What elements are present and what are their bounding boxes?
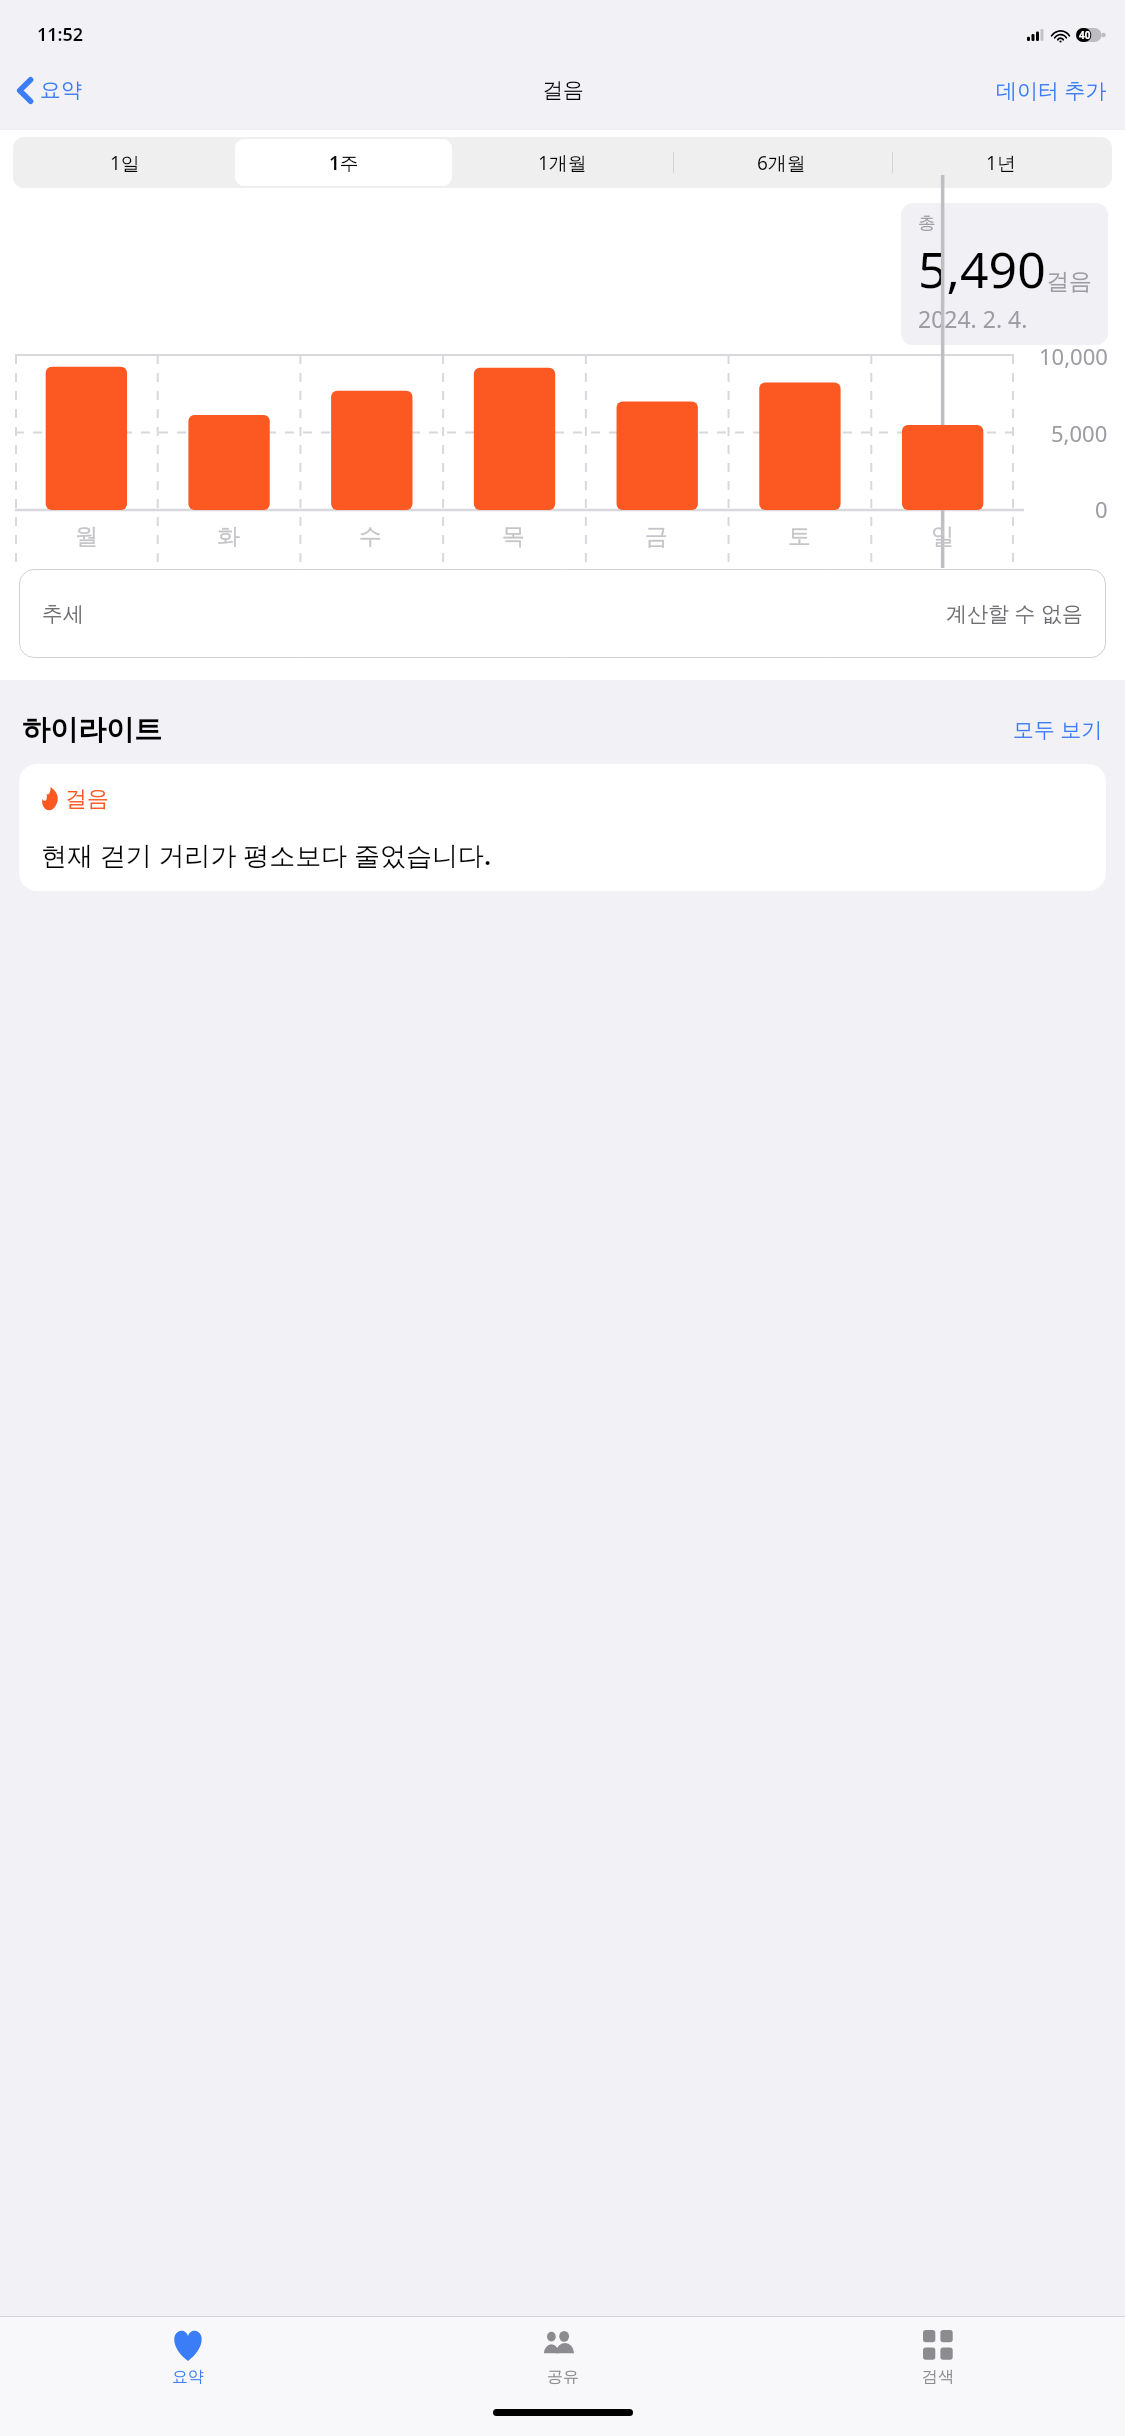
staticText: 총 [918,212,936,235]
staticText: 1일 [110,150,140,176]
button[interactable]: 1개월 [454,139,671,186]
button[interactable]: 추세 [19,569,1106,658]
staticText: 2024. 2. 4. [918,303,1028,334]
staticText: 40 [1079,28,1091,42]
staticText: 1주 [329,150,359,176]
button[interactable]: 모두 보기 [1013,715,1103,744]
staticText: 걸음 [542,77,584,103]
button[interactable]: 6개월 [673,139,890,186]
button[interactable]: 1일 [16,139,233,186]
staticText: 추세 [42,601,84,627]
staticText: 일 [931,522,954,551]
button[interactable]: 1년 [892,139,1109,186]
button[interactable]: 걸음 [19,764,1106,891]
staticText: 공유 [547,2367,579,2387]
staticText: 수 [359,522,382,551]
other: 검색 [923,2330,953,2360]
button[interactable]: 데이터 추가 [978,66,1125,115]
staticText: 11:52 [37,22,84,47]
button[interactable]: 요약 [10,69,90,111]
staticText: 월 [75,522,98,551]
staticText: 요약 [40,77,82,103]
button[interactable]: 1주 [235,139,452,186]
staticText: 현재 걷기 거리가 평소보다 줄었습니다. [41,837,492,873]
other: 공유 [544,2331,582,2360]
staticText: 걸음 [65,785,109,813]
staticText: 걸음 [1046,267,1092,296]
staticText: 목 [502,522,525,551]
staticText: 금 [645,522,668,551]
staticText: 요약 [172,2367,204,2387]
staticText: 1개월 [538,150,587,176]
other: 요약 [171,2330,205,2361]
button[interactable]: 요약 [0,2317,375,2402]
staticText: 0 [1095,494,1108,524]
staticText: 5,490 [918,235,1046,303]
staticText: 6개월 [757,150,806,176]
button[interactable]: 검색 [750,2317,1125,2402]
staticText: 5,000 [1051,418,1108,448]
staticText: 하이라이트 [22,712,162,747]
staticText: 계산할 수 없음 [946,599,1083,628]
button[interactable]: 공유 [375,2317,750,2402]
staticText: 1년 [986,150,1016,176]
staticText: 검색 [922,2367,954,2387]
staticText: 10,000 [1039,341,1108,371]
staticText: 화 [217,522,240,551]
staticText: 토 [788,522,811,551]
